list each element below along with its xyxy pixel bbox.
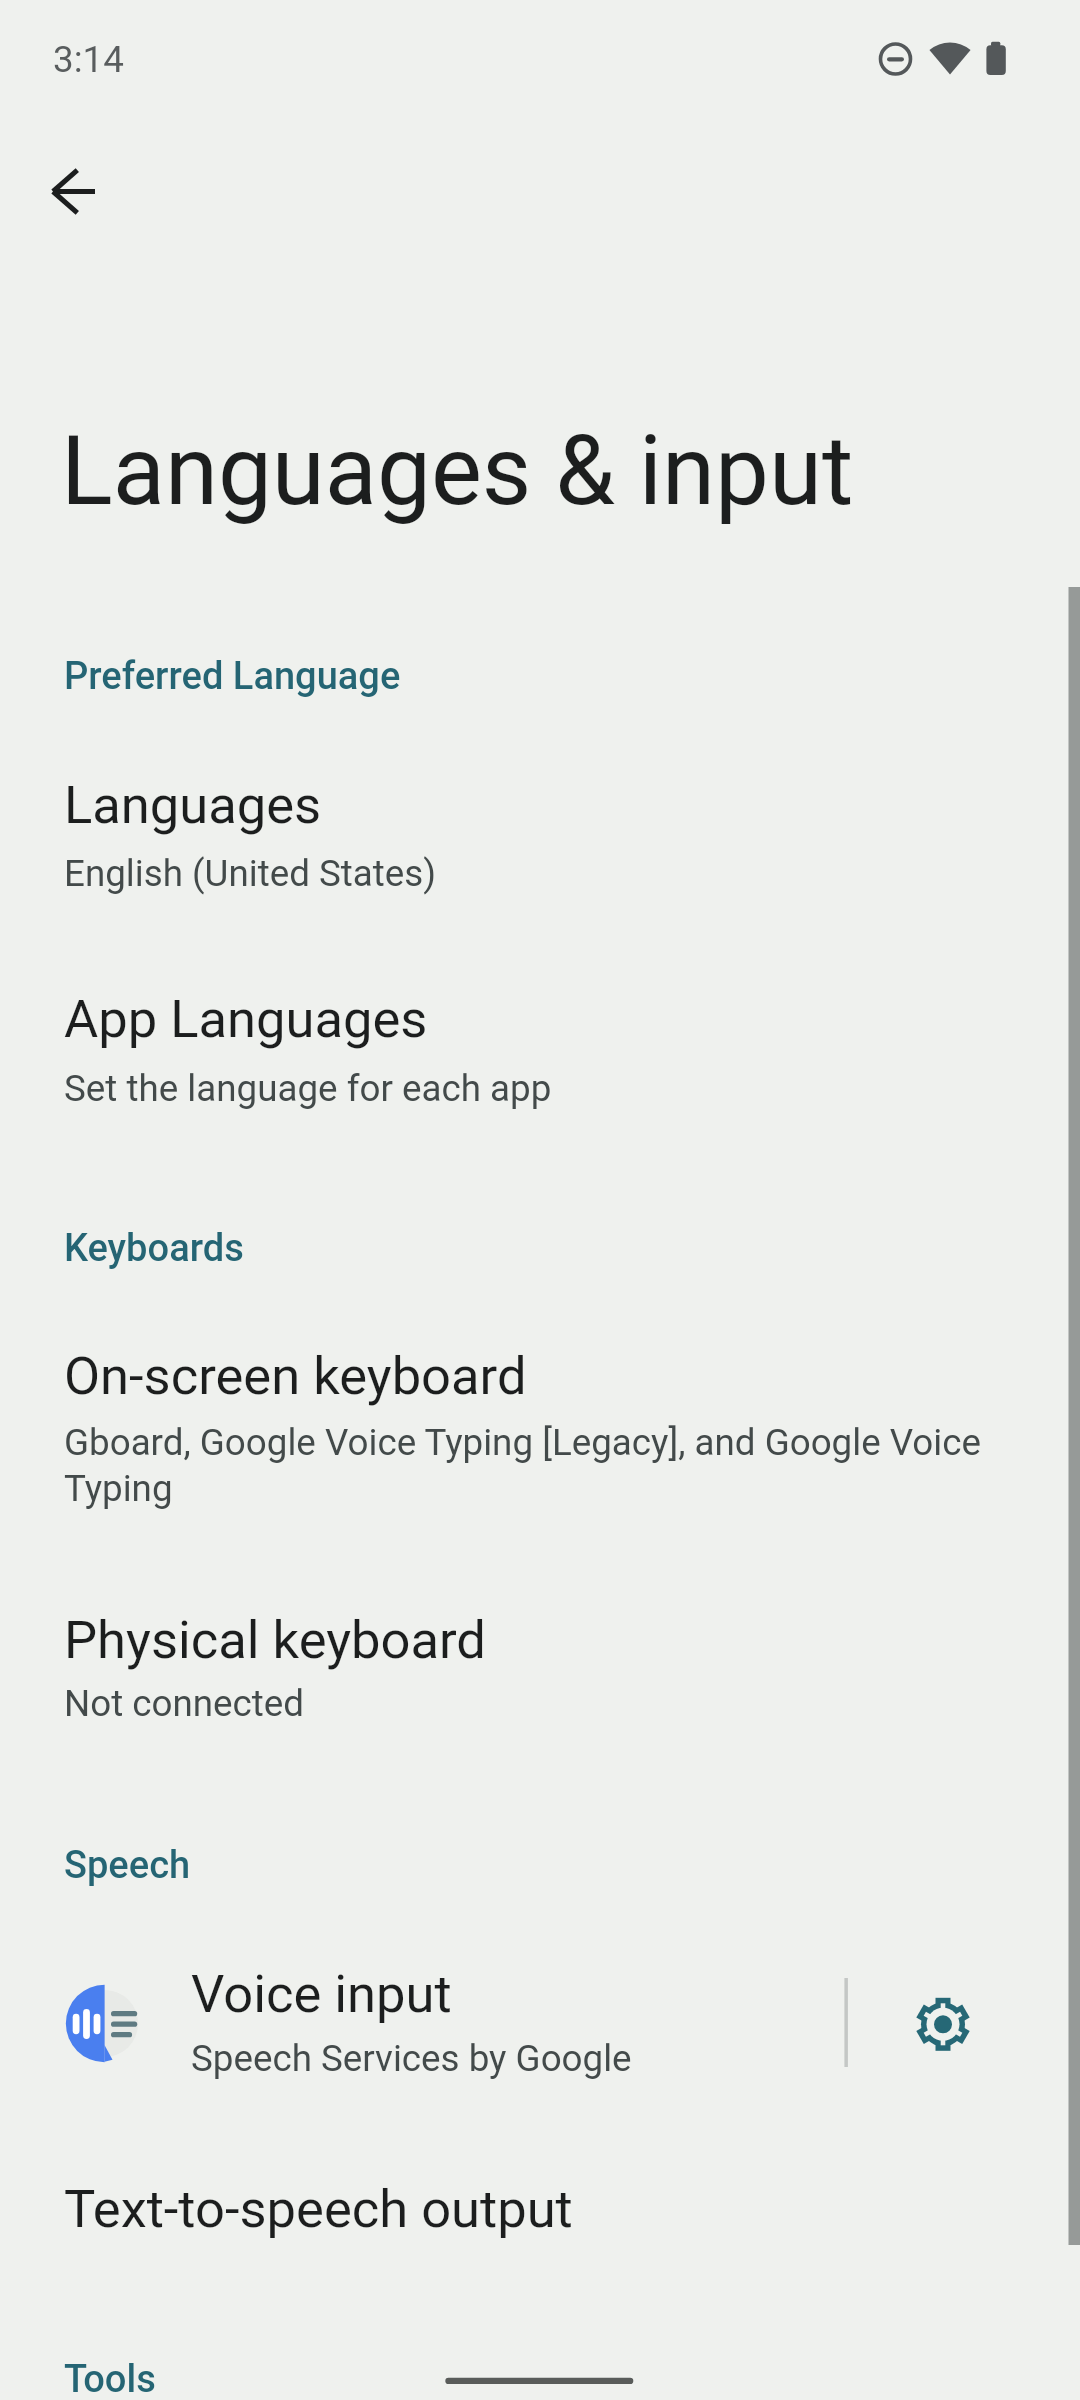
staticText: Typing (64, 1467, 173, 1510)
staticText: Speech Services by Google (191, 2037, 632, 2080)
staticText: On-screen keyboard (64, 1345, 527, 1407)
staticText: Speech (64, 1843, 191, 1888)
button[interactable]: Text-to-speech output (0, 2153, 1080, 2303)
staticText: Tools (64, 2357, 156, 2400)
button[interactable]: On-screen keyboard (0, 1322, 1080, 1532)
button[interactable]: Languages (0, 752, 1080, 912)
staticText: Preferred Language (64, 654, 401, 699)
staticText: Voice input (191, 1963, 452, 2025)
staticText: 3:14 (53, 38, 124, 81)
button[interactable] (905, 1986, 981, 2062)
button[interactable]: App Languages (0, 966, 1080, 1126)
button[interactable] (42, 160, 106, 224)
staticText: Languages & input (61, 415, 854, 528)
staticText: Physical keyboard (64, 1609, 486, 1671)
button[interactable]: Physical keyboard (0, 1584, 1080, 1744)
staticText: App Languages (64, 988, 428, 1050)
staticText: Keyboards (64, 1226, 244, 1271)
staticText: Set the language for each app (64, 1067, 552, 1110)
staticText: Text-to-speech output (64, 2178, 573, 2240)
staticText: English (United States) (64, 852, 437, 895)
staticText: Not connected (64, 1682, 305, 1725)
button[interactable]: Voice input (0, 1938, 820, 2110)
staticText: Gboard, Google Voice Typing [Legacy], an… (64, 1421, 981, 1464)
staticText: Languages (64, 774, 322, 836)
